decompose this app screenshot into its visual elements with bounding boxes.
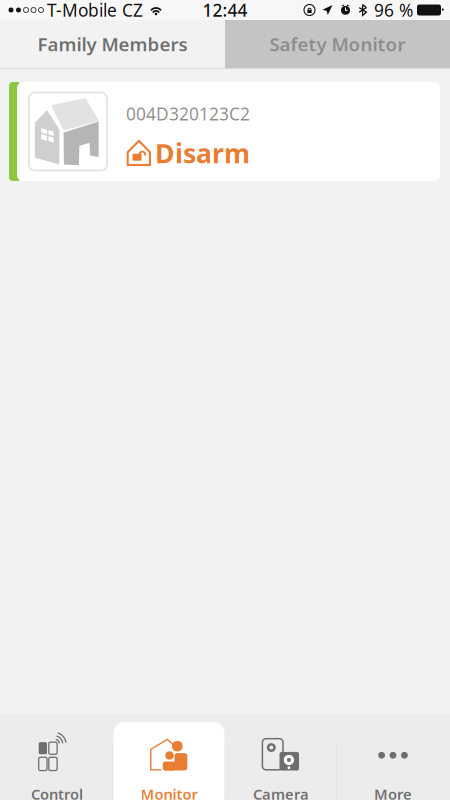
button[interactable]: 004D320123C2 <box>9 82 440 181</box>
button[interactable]: Family Members <box>0 20 225 68</box>
staticText: 12:44 <box>202 0 247 21</box>
staticText: Family Members <box>37 32 187 56</box>
staticText: 96 % <box>374 0 413 21</box>
staticText: Disarm <box>155 135 250 171</box>
button[interactable]: Monitor <box>113 714 225 800</box>
button[interactable]: Safety Monitor <box>225 20 450 68</box>
staticText: Camera <box>253 784 309 800</box>
staticText: T-Mobile CZ <box>47 0 143 21</box>
staticText: 004D320123C2 <box>126 102 250 125</box>
button[interactable]: Camera <box>225 714 337 800</box>
button[interactable]: More <box>337 714 449 800</box>
staticText: More <box>374 784 412 800</box>
staticText: Monitor <box>140 784 197 800</box>
staticText: Control <box>31 784 83 800</box>
button[interactable]: Control <box>1 714 113 800</box>
staticText: Safety Monitor <box>269 32 405 56</box>
